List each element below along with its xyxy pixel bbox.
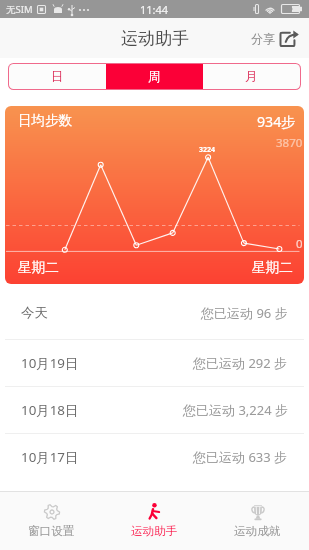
button[interactable]: 窗口设置 <box>0 492 103 539</box>
staticText: 10月19日 <box>21 354 79 372</box>
button[interactable]: 运动成就 <box>206 492 309 539</box>
staticText: 运动成就 <box>234 524 281 539</box>
button[interactable]: 分享 <box>251 30 299 47</box>
staticText: 无SIM <box>6 3 33 16</box>
staticText: 10月18日 <box>21 401 79 419</box>
staticText: 星期二 <box>18 259 59 276</box>
staticText: 10月17日 <box>21 448 79 466</box>
button[interactable]: 日 <box>9 64 106 89</box>
staticText: 11:44 <box>140 2 169 17</box>
staticText: 周 <box>148 69 161 85</box>
staticText: 您已运动 292 步 <box>193 354 288 372</box>
button[interactable]: 10月17日 <box>0 434 309 480</box>
staticText: 934步 <box>257 112 296 131</box>
button[interactable]: 运动助手 <box>103 492 206 539</box>
staticText: 月 <box>245 69 258 85</box>
staticText: 分享 <box>251 31 275 46</box>
button[interactable]: 周 <box>106 64 203 89</box>
staticText: 日均步数 <box>18 112 73 129</box>
staticText: 0 <box>296 236 303 252</box>
staticText: 3224 <box>199 145 216 155</box>
button[interactable]: 10月18日 <box>0 387 309 433</box>
staticText: 今天 <box>21 304 48 321</box>
button[interactable]: 月 <box>203 64 300 89</box>
staticText: 您已运动 96 步 <box>201 304 288 322</box>
staticText: 日 <box>51 69 64 85</box>
staticText: 窗口设置 <box>28 524 75 539</box>
staticText: 您已运动 3,224 步 <box>183 401 288 419</box>
staticText: 星期二 <box>252 259 293 276</box>
button[interactable]: 今天 <box>0 286 309 339</box>
button[interactable]: 10月19日 <box>0 340 309 386</box>
staticText: 运动助手 <box>131 524 178 539</box>
staticText: 3870 <box>276 135 303 151</box>
staticText: 您已运动 633 步 <box>193 448 288 466</box>
staticText: 运动助手 <box>121 28 189 49</box>
